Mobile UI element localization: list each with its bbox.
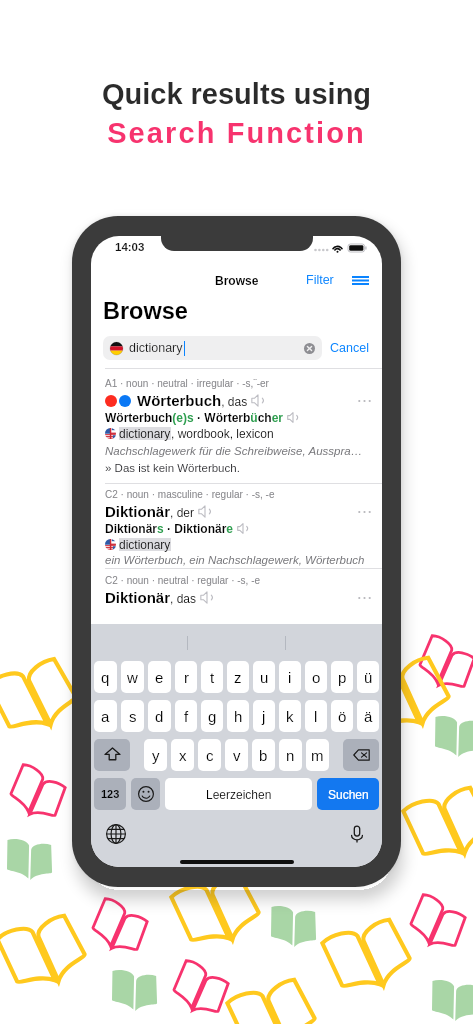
button[interactable]: l — [305, 700, 327, 732]
button[interactable]: k — [279, 700, 301, 732]
button[interactable]: Dictate — [344, 821, 370, 847]
button[interactable]: A1 · noun · neutral · irregular · -s,¨-e… — [91, 369, 382, 483]
staticText: Diktionär, der — [105, 503, 195, 520]
staticText: Leerzeichen — [206, 788, 272, 801]
staticText: x — [179, 747, 187, 764]
staticText: Quick results using — [0, 78, 473, 110]
button[interactable]: v — [225, 739, 248, 771]
staticText: y — [152, 747, 160, 764]
staticText: v — [233, 747, 241, 764]
staticText: 14:03 — [115, 241, 145, 254]
button[interactable]: f — [175, 700, 197, 732]
button[interactable]: Cancel — [329, 337, 370, 359]
staticText: l — [314, 708, 318, 725]
button[interactable]: ö — [331, 700, 353, 732]
button[interactable]: q — [94, 661, 117, 693]
staticText: z — [234, 669, 242, 686]
button[interactable]: j — [253, 700, 275, 732]
button[interactable]: u — [253, 661, 275, 693]
staticText: c — [206, 747, 214, 764]
staticText: Diktionär, das — [105, 589, 197, 606]
staticText: ä — [364, 708, 373, 725]
button[interactable]: o — [305, 661, 327, 693]
staticText: 123 — [101, 788, 120, 800]
staticText: n — [286, 747, 295, 764]
button[interactable]: ü — [357, 661, 379, 693]
staticText: m — [311, 747, 324, 764]
staticText: C2 · noun · neutral · regular · -s, -e — [105, 575, 261, 586]
button[interactable]: b — [252, 739, 275, 771]
staticText: Nachschlagewerk für die Schreibweise, Au… — [105, 445, 363, 458]
button[interactable]: dictionary — [103, 336, 322, 360]
staticText: Filter — [306, 273, 334, 287]
button[interactable]: d — [148, 700, 171, 732]
button[interactable]: Menu — [350, 270, 370, 290]
staticText: k — [286, 708, 294, 725]
button[interactable]: m — [306, 739, 329, 771]
button[interactable]: Suchen — [317, 778, 379, 810]
staticText: t — [210, 669, 215, 686]
button[interactable]: s — [121, 700, 144, 732]
button[interactable]: n — [279, 739, 302, 771]
staticText: Diktionärs · Diktionäre — [105, 522, 234, 535]
button[interactable]: r — [175, 661, 197, 693]
staticText: Search Function — [0, 117, 473, 149]
staticText: dictionary — [119, 538, 171, 551]
button[interactable]: z — [227, 661, 249, 693]
staticText: Suchen — [328, 788, 369, 801]
button[interactable] — [94, 739, 130, 771]
button[interactable]: x — [171, 739, 194, 771]
button[interactable]: c — [198, 739, 221, 771]
button[interactable]: C2 · noun · neutral · regular · -s, -e — [91, 569, 382, 608]
staticText: C2 · noun · masculine · regular · -s, -e — [105, 489, 275, 500]
button[interactable]: 123 — [94, 778, 126, 810]
button[interactable]: i — [279, 661, 301, 693]
button[interactable]: e — [148, 661, 171, 693]
button[interactable]: ä — [357, 700, 379, 732]
staticText: Wörterbuch(e)s · Wörterbücher — [105, 411, 284, 424]
button[interactable]: w — [121, 661, 144, 693]
staticText: i — [288, 669, 292, 686]
staticText: Wörterbuch, das — [137, 392, 248, 409]
staticText: s — [129, 708, 137, 725]
staticText: q — [101, 669, 110, 686]
button[interactable]: t — [201, 661, 223, 693]
button[interactable]: y — [144, 739, 167, 771]
staticText: h — [234, 708, 243, 725]
button[interactable]: C2 · noun · masculine · regular · -s, -e — [91, 484, 382, 568]
staticText: w — [127, 669, 138, 686]
staticText: dictionary — [119, 427, 171, 440]
staticText: ö — [338, 708, 347, 725]
button[interactable] — [343, 739, 379, 771]
staticText: p — [338, 669, 347, 686]
button[interactable]: Leerzeichen — [165, 778, 312, 810]
button[interactable]: a — [94, 700, 117, 732]
button[interactable]: p — [331, 661, 353, 693]
staticText: Browse — [215, 274, 259, 287]
staticText: r — [184, 669, 189, 686]
button[interactable]: g — [201, 700, 223, 732]
staticText: Cancel — [330, 341, 369, 355]
button[interactable] — [131, 778, 160, 810]
button[interactable]: h — [227, 700, 249, 732]
staticText: a — [101, 708, 110, 725]
button[interactable]: Change keyboard language — [103, 821, 129, 847]
staticText: , wordbook, lexicon — [171, 427, 274, 440]
staticText: j — [262, 708, 266, 725]
staticText: ü — [364, 669, 373, 686]
staticText: g — [208, 708, 217, 725]
staticText: ein Wörterbuch, ein Nachschlagewerk, Wör… — [105, 554, 365, 567]
staticText: o — [312, 669, 321, 686]
button[interactable]: Filter — [304, 270, 336, 290]
staticText: Browse — [103, 298, 188, 324]
staticText: f — [184, 708, 189, 725]
staticText: b — [259, 747, 268, 764]
staticText: e — [155, 669, 164, 686]
staticText: A1 · noun · neutral · irregular · -s,¨-e… — [105, 378, 269, 389]
staticText: » Das ist kein Wörterbuch. — [105, 462, 240, 475]
staticText: d — [155, 708, 164, 725]
staticText: u — [260, 669, 269, 686]
staticText: dictionary — [129, 341, 183, 355]
